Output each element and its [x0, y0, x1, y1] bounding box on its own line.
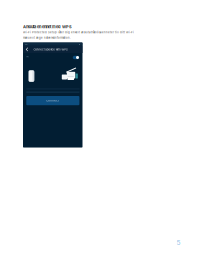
staticText: 9:41: [25, 43, 28, 45]
button[interactable]: Back: [24, 46, 30, 53]
staticText: · ıl ▪: [79, 43, 80, 45]
staticText: Connect: [46, 99, 59, 102]
staticText: Ansluta en enhet med WPS: [23, 24, 72, 29]
button[interactable]: Connect: [26, 96, 79, 105]
staticText: WPS: [26, 56, 29, 58]
staticText: manuellt ange nätverksinformation.: [23, 36, 71, 39]
staticText: 5: [176, 238, 180, 247]
staticText: Wi-Fi Protected Setup låter dig enkelt a…: [23, 31, 134, 34]
button[interactable]: WPS toggle: [73, 56, 79, 59]
staticText: Connect a Device with WPS: [33, 48, 68, 51]
